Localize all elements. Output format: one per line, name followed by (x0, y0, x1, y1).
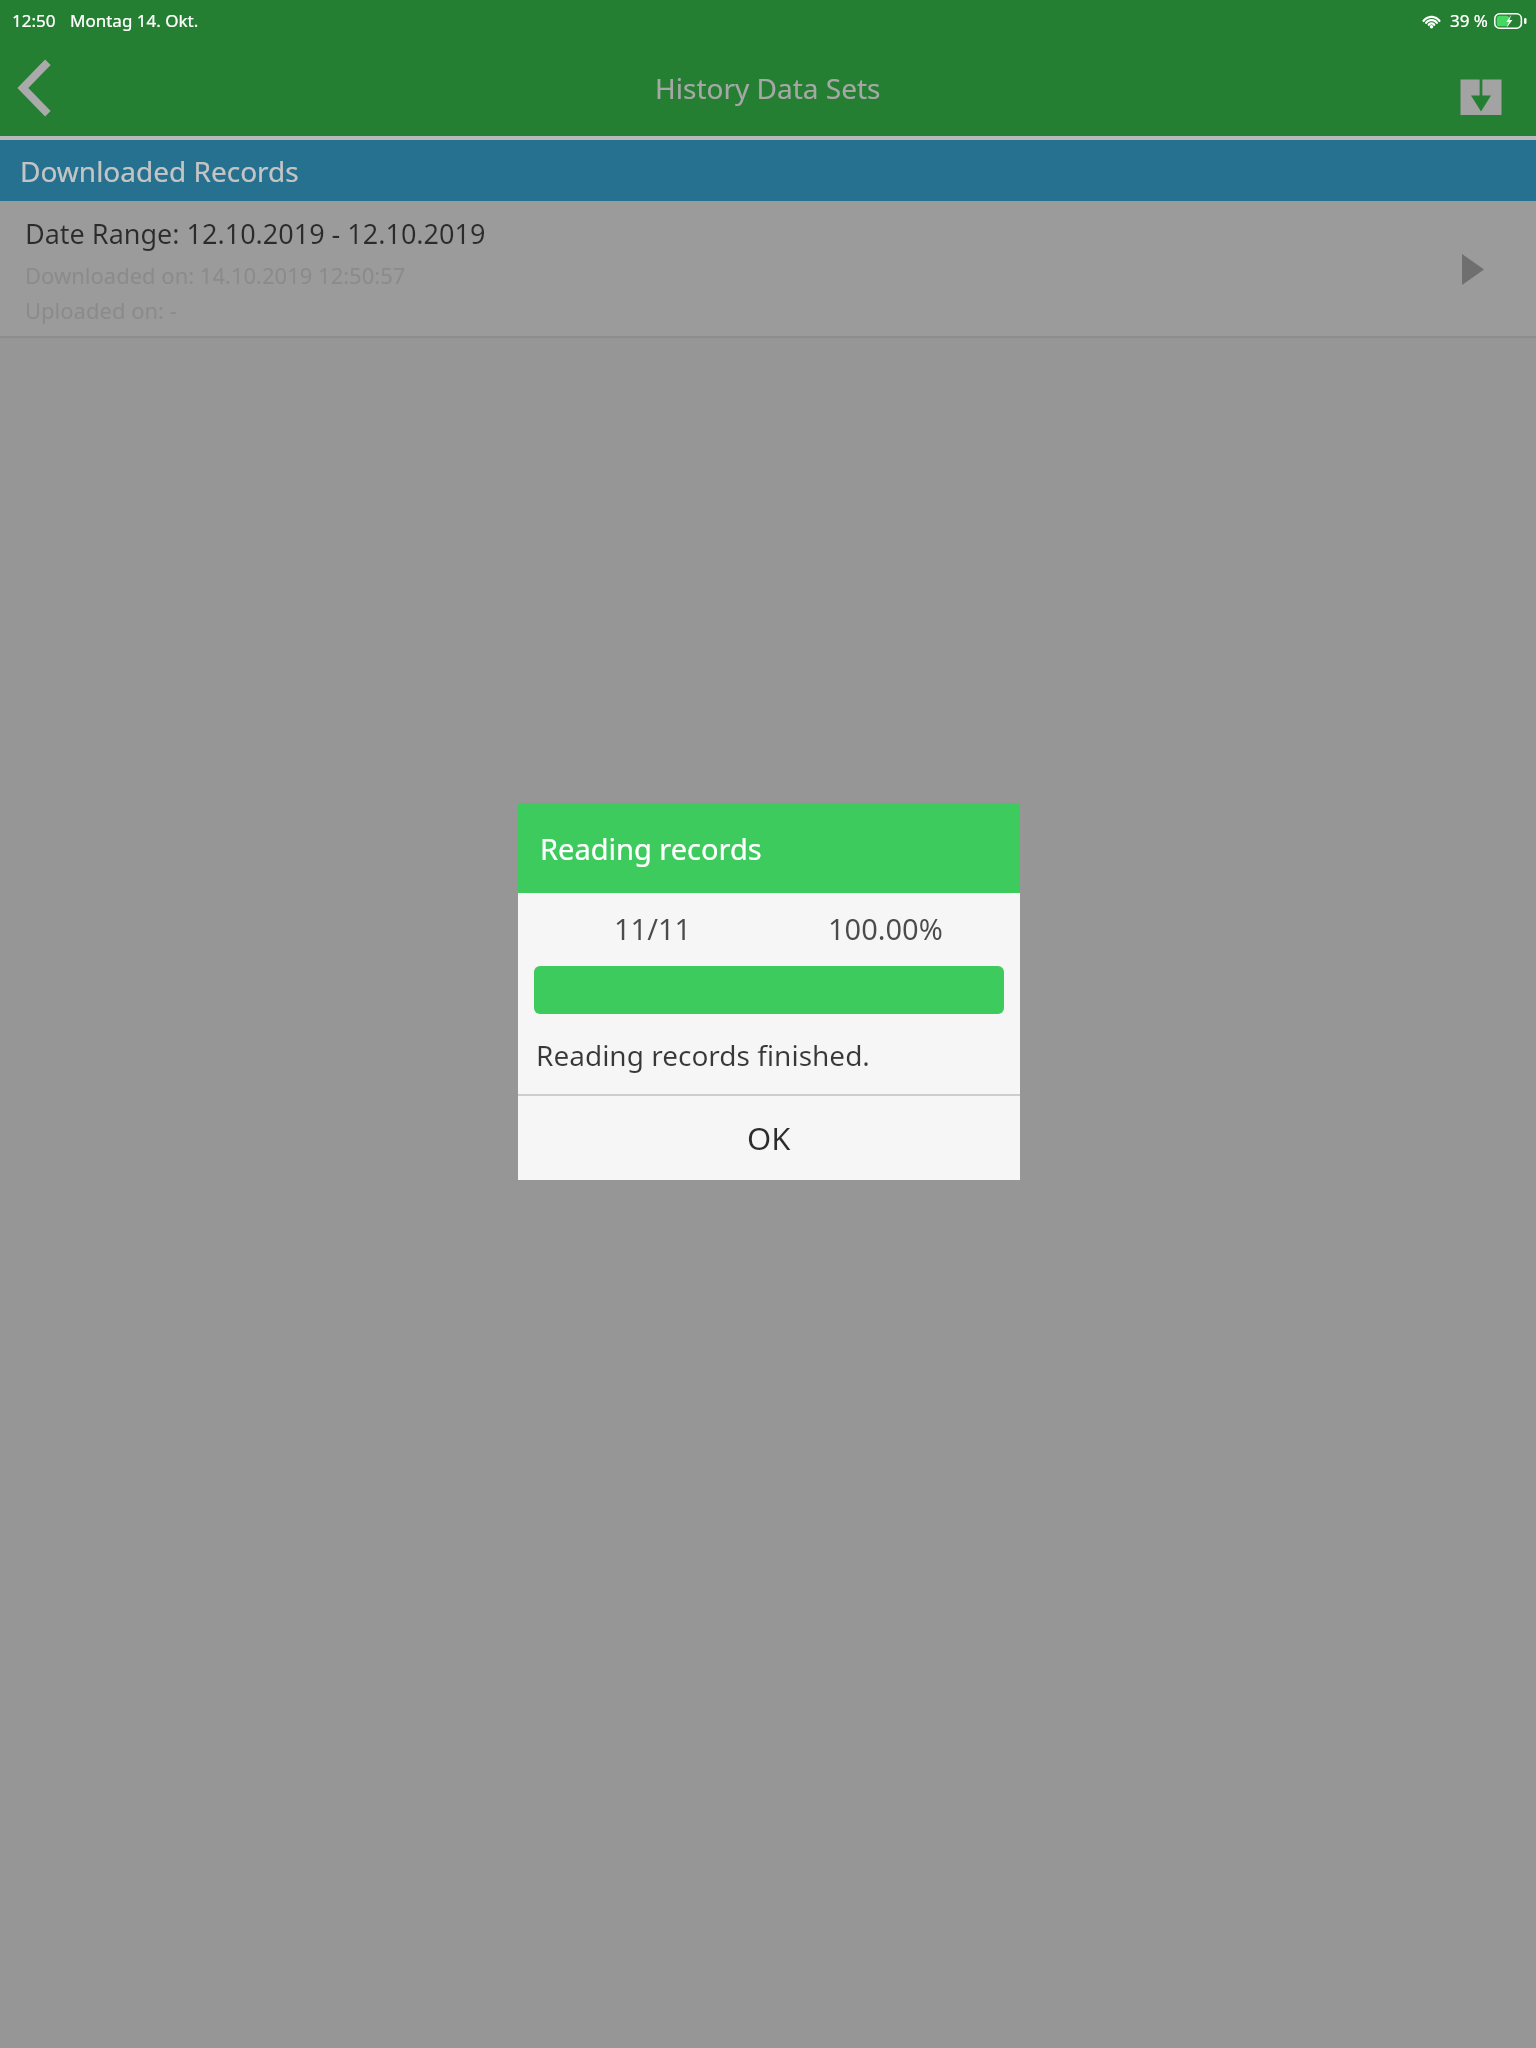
staticText: 39 % (1450, 9, 1488, 32)
button[interactable]: Date Range: 12.10.2019 - 12.10.2019 (0, 201, 1536, 338)
staticText: OK (747, 1117, 791, 1159)
button[interactable]: Download (1436, 40, 1536, 136)
staticText: 11/11 (614, 909, 692, 948)
button[interactable]: OK (518, 1096, 1020, 1180)
staticText: Downloaded Records (20, 152, 299, 190)
staticText: Date Range: 12.10.2019 - 12.10.2019 (25, 215, 486, 252)
staticText: History Data Sets (655, 69, 881, 107)
staticText: Downloaded on: 14.10.2019 12:50:57 (25, 260, 406, 290)
button[interactable]: Back (0, 40, 100, 136)
staticText: 12:50 (12, 9, 56, 32)
staticText: 100.00% (828, 909, 943, 948)
staticText: Montag 14. Okt. (70, 9, 199, 32)
staticText: Reading records finished. (536, 1036, 870, 1074)
staticText: Uploaded on: - (25, 295, 177, 325)
staticText: Reading records (540, 829, 762, 868)
